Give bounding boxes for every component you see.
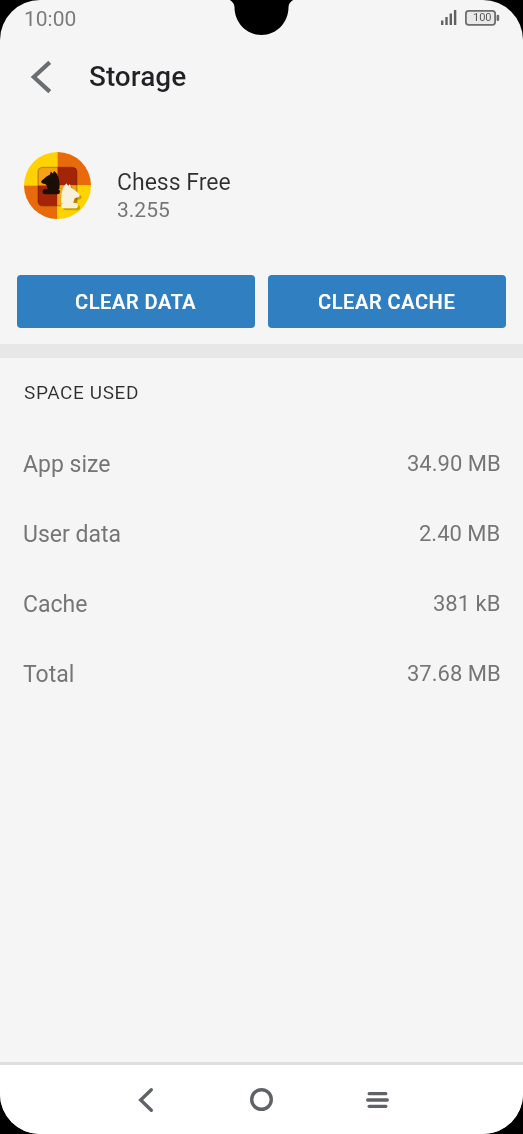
staticText: 2.40 MB xyxy=(419,521,501,547)
staticText: 3.255 xyxy=(117,198,170,223)
staticText: User data xyxy=(23,521,121,548)
button[interactable]: CLEAR DATA xyxy=(17,275,255,328)
button[interactable]: User data xyxy=(0,499,523,569)
staticText: Cache xyxy=(23,591,88,618)
staticText: 381 kB xyxy=(433,591,501,617)
staticText: CLEAR CACHE xyxy=(318,290,456,313)
staticText: 100 xyxy=(473,11,492,24)
staticText: CLEAR DATA xyxy=(75,290,197,313)
staticText: SPACE USED xyxy=(24,381,140,403)
button[interactable]: Total xyxy=(0,639,523,709)
button[interactable]: Home xyxy=(203,1065,319,1134)
staticText: Storage xyxy=(89,60,187,93)
staticText: Chess Free xyxy=(117,169,231,196)
staticText: App size xyxy=(23,451,111,478)
button[interactable]: CLEAR CACHE xyxy=(268,275,506,328)
button[interactable]: Cache xyxy=(0,569,523,639)
button[interactable]: Recent apps xyxy=(319,1065,435,1134)
staticText: 37.68 MB xyxy=(407,661,501,687)
staticText: 34.90 MB xyxy=(407,451,501,477)
staticText: 10:00 xyxy=(24,7,77,32)
button[interactable]: Back xyxy=(88,1065,203,1134)
button[interactable]: App size xyxy=(0,429,523,499)
button[interactable]: Navigate up xyxy=(12,48,69,105)
staticText: Total xyxy=(23,661,75,688)
